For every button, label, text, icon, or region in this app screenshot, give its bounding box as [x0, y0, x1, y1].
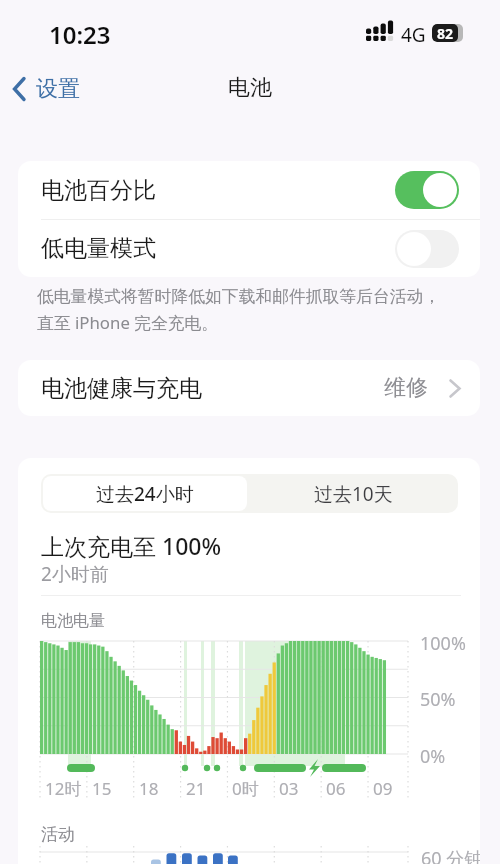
button[interactable]: 低电量模式	[18, 220, 480, 277]
staticText: 21	[186, 777, 206, 800]
button[interactable]: Back	[8, 72, 84, 106]
staticText: 0时	[232, 777, 259, 800]
staticText: 12时	[45, 777, 82, 800]
staticText: 03	[279, 777, 299, 800]
button[interactable]: 电池百分比	[18, 161, 480, 219]
staticText: 过去24小时	[96, 481, 194, 507]
staticText: 60 分钟	[421, 846, 480, 864]
staticText: 18	[139, 777, 159, 800]
staticText: 电池	[228, 74, 272, 102]
other: Open	[449, 379, 461, 398]
button[interactable]: 电池健康与充电	[18, 360, 480, 416]
staticText: 活动	[41, 824, 75, 845]
button[interactable]: 过去10天	[249, 474, 458, 513]
staticText: 低电量模式	[41, 234, 156, 263]
staticText: 15	[92, 777, 112, 800]
staticText: 100%	[420, 631, 466, 656]
staticText: 电池电量	[41, 611, 105, 631]
staticText: 10:23	[49, 18, 111, 51]
staticText: 4G	[401, 22, 426, 48]
staticText: 过去10天	[314, 481, 393, 507]
staticText: 0%	[420, 744, 446, 769]
staticText: 09	[373, 777, 393, 800]
staticText: 直至 iPhone 完全充电。	[37, 311, 219, 334]
staticText: 低电量模式将暂时降低如下载和邮件抓取等后台活动，	[37, 286, 441, 307]
staticText: 2小时前	[41, 561, 109, 587]
other: Signal strength	[366, 23, 395, 41]
staticText: 电池百分比	[41, 176, 156, 205]
staticText: 设置	[36, 75, 80, 103]
staticText: 维修	[384, 374, 428, 402]
other: Back	[12, 76, 26, 102]
staticText: 82	[437, 24, 454, 42]
staticText: 上次充电至 100%	[41, 530, 222, 561]
staticText: 06	[326, 777, 346, 800]
staticText: 50%	[420, 687, 456, 712]
button[interactable]: 过去24小时	[43, 476, 247, 511]
staticText: 电池健康与充电	[41, 374, 202, 403]
